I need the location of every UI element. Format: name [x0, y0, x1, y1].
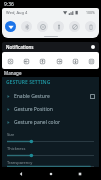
- staticText: Gesture panel color: [14, 119, 61, 126]
- button[interactable]: Notifications: [2, 42, 99, 52]
- button[interactable]: Transparency: [7, 160, 94, 167]
- staticText: Transparency: [7, 160, 33, 165]
- button[interactable]: Gesture 2: [37, 56, 47, 66]
- button[interactable]: Quick setting tile: [69, 21, 80, 32]
- button[interactable]: Size: [7, 132, 94, 146]
- button[interactable]: Quick setting tile: [21, 21, 32, 32]
- button[interactable]: Gesture 0: [5, 56, 15, 66]
- staticText: Size: [7, 132, 15, 137]
- button[interactable]: Back: [12, 167, 30, 180]
- button[interactable]: Quick setting tile: [37, 21, 48, 32]
- staticText: 100%: [86, 10, 95, 15]
- button[interactable]: Quick setting tile: [85, 21, 96, 32]
- button[interactable]: Gesture 4: [70, 56, 80, 66]
- button[interactable]: Recents: [71, 167, 89, 180]
- button[interactable]: Gesture 1: [21, 56, 31, 66]
- button[interactable]: Gesture Position: [2, 103, 99, 116]
- staticText: Enable Gesture: [14, 93, 50, 100]
- staticText: Notifications: [6, 44, 34, 50]
- button[interactable]: Thickness: [7, 146, 94, 160]
- button[interactable]: Gesture panel color: [2, 116, 99, 129]
- button[interactable]: Gesture 3: [54, 56, 64, 66]
- staticText: GESTURE SETTING: [6, 79, 51, 86]
- button[interactable]: Gesture 5: [86, 56, 96, 66]
- button[interactable]: Enable Gesture: [2, 90, 99, 103]
- staticText: Wed, Aug 4: [6, 10, 28, 15]
- button[interactable]: Manage: [0, 69, 101, 77]
- button[interactable]: Home: [42, 167, 60, 180]
- staticText: 9:36: [4, 1, 14, 8]
- button[interactable]: Quick setting tile: [53, 21, 64, 32]
- staticText: Thickness: [7, 146, 26, 151]
- button[interactable]: Quick setting tile: [5, 21, 16, 32]
- staticText: Gesture Position: [14, 106, 53, 113]
- staticText: Manage: [4, 70, 22, 76]
